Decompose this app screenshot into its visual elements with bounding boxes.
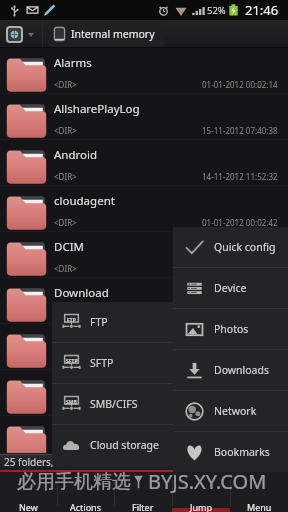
button[interactable]: AllsharePlayLog xyxy=(0,94,288,140)
staticText: Download xyxy=(54,285,109,301)
button[interactable]: Downloads xyxy=(173,350,288,390)
staticText: Jump xyxy=(190,501,212,512)
staticText: Cloud storage xyxy=(90,438,159,452)
staticText: 01-01-2012 00:02:14 xyxy=(202,79,278,90)
button[interactable]: DCIM xyxy=(0,232,288,278)
staticText: <DIR> xyxy=(54,309,77,320)
staticText: 01-01-2012 00:02:42 xyxy=(202,217,278,228)
button[interactable]: Internal memory xyxy=(49,21,164,47)
staticText: Network xyxy=(214,404,257,418)
staticText: 52% xyxy=(207,4,226,17)
staticText: Filter xyxy=(132,501,154,512)
button[interactable]: Quick config xyxy=(173,227,288,267)
staticText: <DIR> xyxy=(54,217,77,228)
staticText: Quick config xyxy=(214,240,276,254)
staticText: 01-01-2012 00:02:43 xyxy=(202,263,278,274)
staticText: DCIM xyxy=(54,239,84,255)
staticText: 必用手机精选 xyxy=(17,470,131,494)
button[interactable]: <DIR> xyxy=(0,324,288,370)
staticText: SFTP xyxy=(66,358,78,365)
staticText: 21:46 xyxy=(245,1,279,19)
button[interactable]: Jump xyxy=(172,472,230,512)
button[interactable]: Actions xyxy=(57,472,114,512)
staticText: SFTP xyxy=(90,356,114,370)
button[interactable]: Photos xyxy=(173,309,288,349)
button[interactable]: SFTP xyxy=(52,343,173,383)
staticText: Alarms xyxy=(54,55,92,71)
staticText: BYJS.XY.COM xyxy=(148,468,267,495)
button[interactable]: FTP xyxy=(52,302,173,342)
staticText: cloudagent xyxy=(54,193,115,209)
staticText: <DIR> xyxy=(54,447,77,458)
staticText: FTP xyxy=(90,315,108,329)
staticText: <DIR> xyxy=(54,355,77,366)
button[interactable]: cloudagent xyxy=(0,186,288,232)
staticText: Bookmarks xyxy=(214,445,270,459)
staticText: 14-11-2012 11:52:32 xyxy=(202,171,278,182)
staticText: Menu xyxy=(247,501,272,512)
button[interactable]: New xyxy=(0,472,57,512)
button[interactable]: Android xyxy=(0,140,288,186)
staticText: 15-11-2012 07:40:38 xyxy=(202,125,278,136)
button[interactable]: Download xyxy=(0,278,288,324)
staticText: New xyxy=(19,501,38,512)
button[interactable]: <DIR> xyxy=(0,416,288,454)
button[interactable]: App menu xyxy=(6,26,34,43)
staticText: Device xyxy=(214,281,247,295)
button[interactable]: Bookmarks xyxy=(173,432,288,472)
staticText: <DIR> xyxy=(54,125,77,136)
staticText: Photos xyxy=(214,322,249,336)
button[interactable]: Alarms xyxy=(0,48,288,94)
staticText: Android xyxy=(54,147,98,163)
button[interactable]: Device xyxy=(173,268,288,308)
staticText: Downloads xyxy=(214,363,269,377)
staticText: FTP xyxy=(67,317,76,324)
button[interactable]: SMB xyxy=(52,384,173,424)
button[interactable]: Filter xyxy=(114,472,172,512)
staticText: 25 folders, xyxy=(4,455,54,469)
staticText: <DIR> xyxy=(54,401,77,412)
staticText: Actions xyxy=(70,501,101,512)
button[interactable]: <DIR> xyxy=(0,370,288,416)
staticText: <DIR> xyxy=(54,79,77,90)
staticText: <DIR> xyxy=(54,171,77,182)
button[interactable]: Menu xyxy=(230,472,288,512)
staticText: SMB xyxy=(66,399,77,406)
staticText: Internal memory xyxy=(71,27,155,41)
staticText: AllsharePlayLog xyxy=(54,101,140,117)
staticText: SMB/CIFS xyxy=(90,397,138,411)
button[interactable]: Cloud storage xyxy=(52,425,173,465)
staticText: <DIR> xyxy=(54,263,77,274)
button[interactable]: Network xyxy=(173,391,288,431)
